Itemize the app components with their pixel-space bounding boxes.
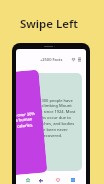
- button[interactable]: Like: [52, 174, 63, 184]
- staticText: Over 300 people have died climbing Mount…: [28, 98, 76, 138]
- button[interactable]: Rewind: [22, 174, 33, 184]
- button[interactable]: Favourites: [70, 56, 76, 62]
- button[interactable]: Undo: [35, 174, 46, 184]
- button[interactable]: Menu: [76, 56, 82, 62]
- button[interactable]: Cats consume over 30% of the food a huma…: [16, 70, 47, 177]
- staticText: Cats consume over 30% of the food a huma…: [16, 111, 37, 131]
- staticText: +2500 Facts: [40, 57, 63, 62]
- button[interactable]: List: [67, 174, 78, 184]
- staticText: Swipe Left: [20, 16, 78, 32]
- button[interactable]: Over 300 people have died climbing Mount…: [22, 73, 82, 171]
